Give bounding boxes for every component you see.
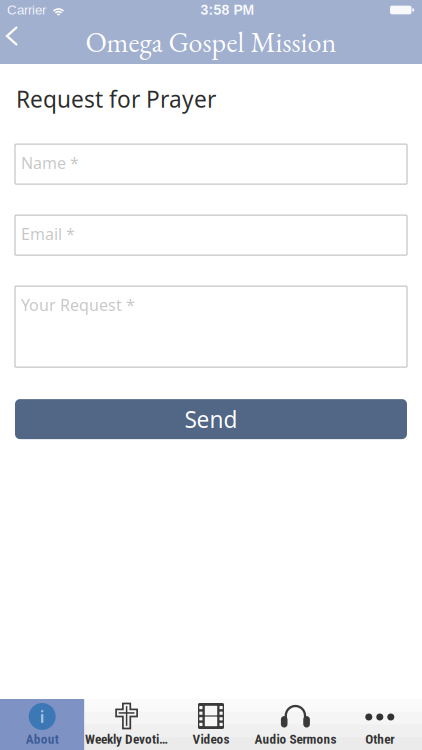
button[interactable]: Back (0, 20, 44, 64)
button[interactable]: Audio Sermons (253, 699, 338, 750)
staticText: Carrier (7, 3, 46, 17)
staticText: Send (184, 404, 237, 434)
button[interactable]: Email * (15, 215, 407, 255)
staticText: Omega Gospel Mission (85, 24, 336, 60)
staticText: 3:58 PM (200, 2, 254, 18)
staticText: Name * (21, 152, 79, 173)
staticText: Other (365, 731, 394, 747)
button[interactable]: Your Request * (15, 286, 407, 367)
button[interactable]: Name * (15, 144, 407, 184)
staticText: Weekly Devoti… (85, 731, 168, 747)
button[interactable]: Weekly Devoti… (84, 699, 169, 750)
button[interactable]: About (0, 699, 84, 750)
staticText: Videos (192, 731, 229, 747)
button[interactable]: Other (338, 699, 422, 750)
staticText: Email * (21, 223, 75, 244)
staticText: Your Request * (21, 294, 135, 315)
button[interactable]: Videos (169, 699, 253, 750)
staticText: About (26, 731, 59, 747)
button[interactable]: Send (15, 399, 407, 439)
staticText: Audio Sermons (254, 731, 336, 747)
staticText: Request for Prayer (16, 84, 216, 114)
